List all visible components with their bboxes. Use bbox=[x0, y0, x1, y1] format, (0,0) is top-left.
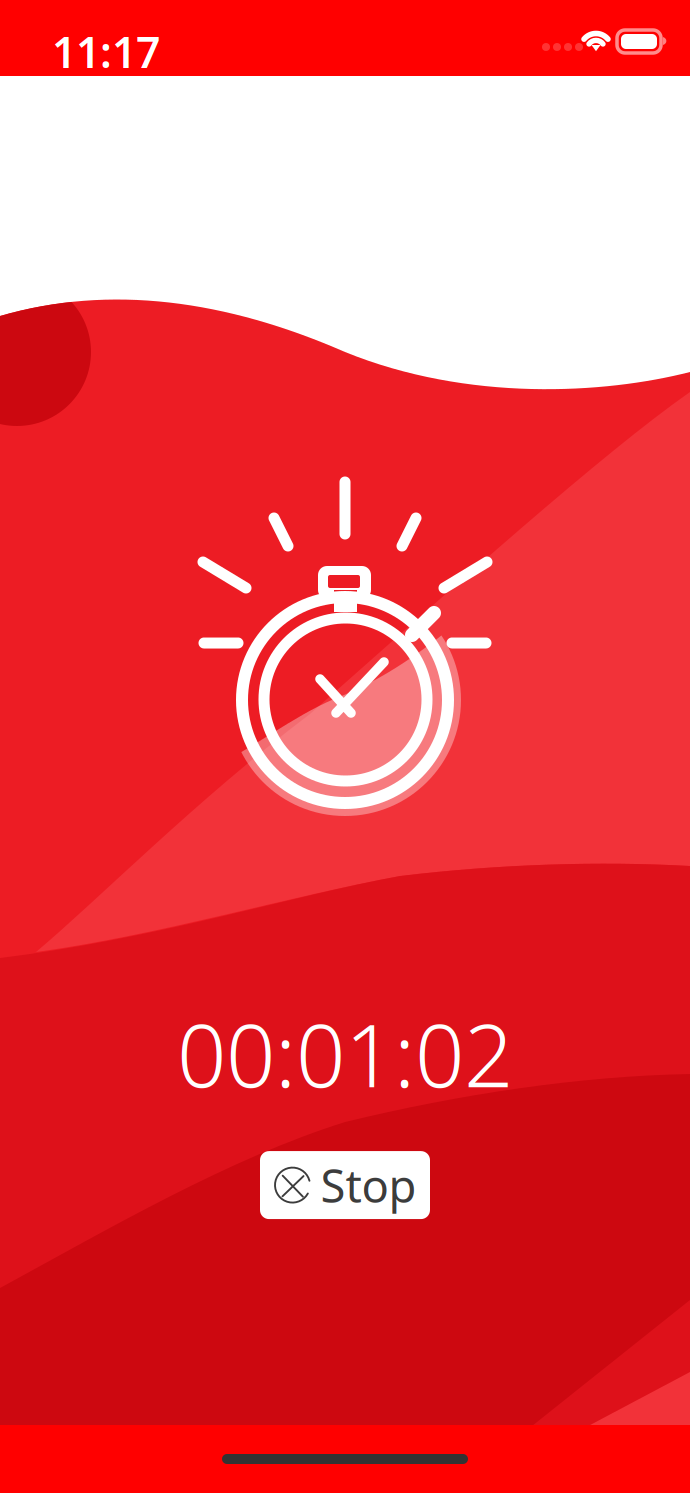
button[interactable]: Stop bbox=[260, 1151, 430, 1219]
staticText: Stop bbox=[320, 1155, 416, 1215]
staticText: 00:01:02 bbox=[177, 996, 513, 1111]
staticText: 11:17 bbox=[52, 23, 160, 80]
